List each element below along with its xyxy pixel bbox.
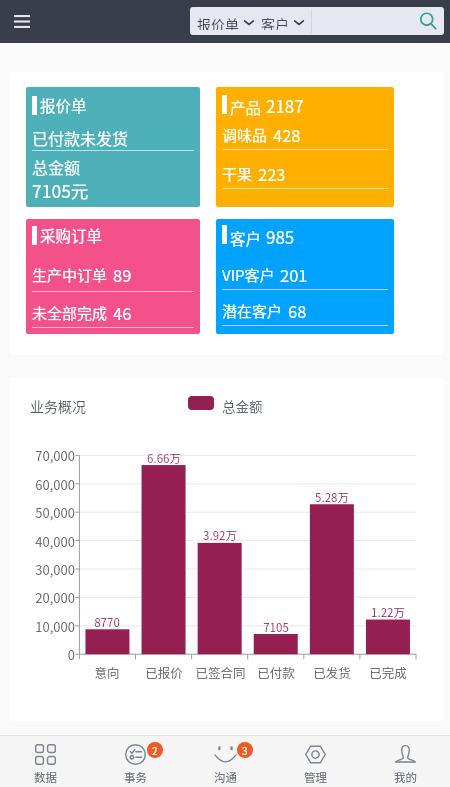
- staticText: 428: [273, 123, 301, 147]
- staticText: 沟通: [214, 769, 237, 786]
- staticText: 业务概况: [30, 396, 86, 416]
- staticText: 干果: [222, 163, 253, 185]
- staticText: 已付款未发货: [32, 126, 129, 149]
- staticText: 管理: [304, 769, 327, 786]
- staticText: 201: [280, 263, 308, 287]
- staticText: 意向: [94, 663, 120, 681]
- staticText: 89: [113, 263, 132, 287]
- button[interactable]: 报价单: [190, 7, 444, 35]
- staticText: 我的: [394, 769, 417, 786]
- staticText: 数据: [34, 769, 57, 786]
- staticText: 2: [152, 743, 158, 757]
- staticText: 5.28万: [315, 489, 349, 506]
- staticText: 未全部完成: [32, 302, 108, 324]
- staticText: 50,000: [35, 503, 75, 522]
- staticText: 总金额: [222, 396, 263, 416]
- staticText: 985: [266, 224, 295, 249]
- staticText: 总金额: [32, 155, 81, 178]
- staticText: 报价单: [40, 94, 87, 116]
- button[interactable]: 客户: [216, 219, 394, 334]
- staticText: 0: [67, 645, 75, 664]
- button[interactable]: 我的: [360, 736, 450, 787]
- button[interactable]: 报价单: [26, 87, 200, 207]
- staticText: VIP客户: [222, 264, 275, 286]
- button[interactable]: 客户: [261, 8, 304, 35]
- staticText: 3: [242, 743, 248, 757]
- staticText: 40,000: [35, 532, 75, 551]
- staticText: 223: [258, 162, 286, 186]
- staticText: 60,000: [35, 475, 75, 494]
- staticText: 20,000: [35, 588, 75, 607]
- staticText: 46: [113, 301, 132, 325]
- staticText: 7105元: [32, 178, 89, 203]
- button[interactable]: 产品: [216, 87, 394, 207]
- staticText: 已完成: [369, 663, 407, 681]
- staticText: 已签合同: [195, 663, 246, 681]
- button[interactable]: 报价单: [197, 8, 254, 35]
- staticText: 2187: [266, 93, 304, 118]
- button[interactable]: 2: [90, 736, 180, 787]
- button[interactable]: 数据: [0, 736, 90, 787]
- staticText: 已付款: [257, 663, 295, 681]
- staticText: 采购订单: [40, 224, 103, 246]
- button[interactable]: Menu: [2, 2, 42, 40]
- staticText: 30,000: [35, 560, 75, 579]
- staticText: 7105: [263, 619, 289, 636]
- staticText: 产品: [230, 96, 262, 118]
- staticText: 客户: [261, 14, 289, 30]
- staticText: 调味品: [222, 124, 268, 146]
- staticText: 客户: [230, 227, 262, 249]
- staticText: 68: [288, 299, 307, 323]
- staticText: 事务: [124, 769, 147, 786]
- staticText: 6.66万: [147, 450, 181, 467]
- staticText: 70,000: [35, 446, 75, 465]
- button[interactable]: 3: [180, 736, 270, 787]
- staticText: 潜在客户: [222, 300, 283, 322]
- staticText: 生产中订单: [32, 264, 108, 286]
- staticText: 1.22万: [371, 604, 405, 621]
- button[interactable]: Search: [412, 7, 444, 35]
- staticText: 已发货: [313, 663, 351, 681]
- staticText: 8770: [94, 614, 120, 631]
- staticText: 3.92万: [203, 527, 237, 544]
- staticText: 已报价: [145, 663, 183, 681]
- staticText: 10,000: [35, 617, 75, 636]
- staticText: 报价单: [197, 14, 239, 30]
- button[interactable]: 管理: [270, 736, 360, 787]
- button[interactable]: 采购订单: [26, 219, 200, 334]
